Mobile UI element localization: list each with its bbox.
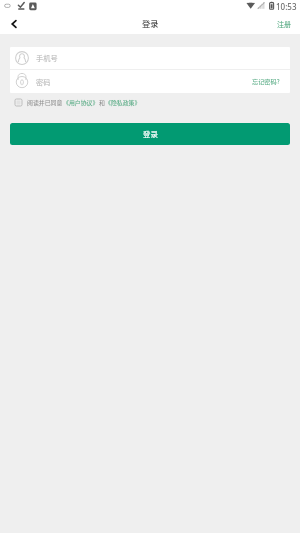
- staticText: 忘记密码?: [252, 77, 280, 86]
- button[interactable]: 登录: [10, 123, 290, 145]
- staticText: 10:53: [276, 1, 297, 12]
- button[interactable]: 忘记密码?: [248, 73, 286, 90]
- button[interactable]: 《隐私政策》: [105, 98, 141, 107]
- staticText: 手机号: [36, 53, 58, 63]
- staticText: 和: [99, 98, 105, 107]
- button[interactable]: 手机号: [10, 47, 290, 69]
- staticText: 注册: [277, 19, 292, 29]
- button[interactable]: 《用户协议》: [63, 98, 99, 107]
- button[interactable]: Back: [5, 15, 23, 33]
- staticText: 登录: [143, 128, 158, 139]
- staticText: 登录: [142, 17, 159, 29]
- staticText: 密码: [36, 77, 51, 87]
- staticText: 阅读并已同意: [27, 98, 63, 107]
- button[interactable]: Agree to terms: [12, 96, 24, 108]
- button[interactable]: 注册: [268, 15, 300, 33]
